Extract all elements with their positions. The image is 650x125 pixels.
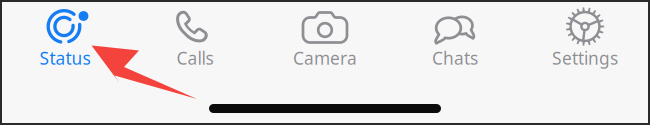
button[interactable]: Status	[0, 0, 130, 76]
button[interactable]: Chats	[390, 0, 520, 76]
button[interactable]: Settings	[520, 0, 650, 76]
staticText: Calls	[176, 46, 213, 69]
button[interactable]: Calls	[130, 0, 260, 76]
staticText: Settings	[552, 46, 618, 69]
staticText: Camera	[293, 46, 357, 69]
button[interactable]: Camera	[260, 0, 390, 76]
staticText: Status	[39, 46, 90, 69]
staticText: Chats	[432, 46, 478, 69]
